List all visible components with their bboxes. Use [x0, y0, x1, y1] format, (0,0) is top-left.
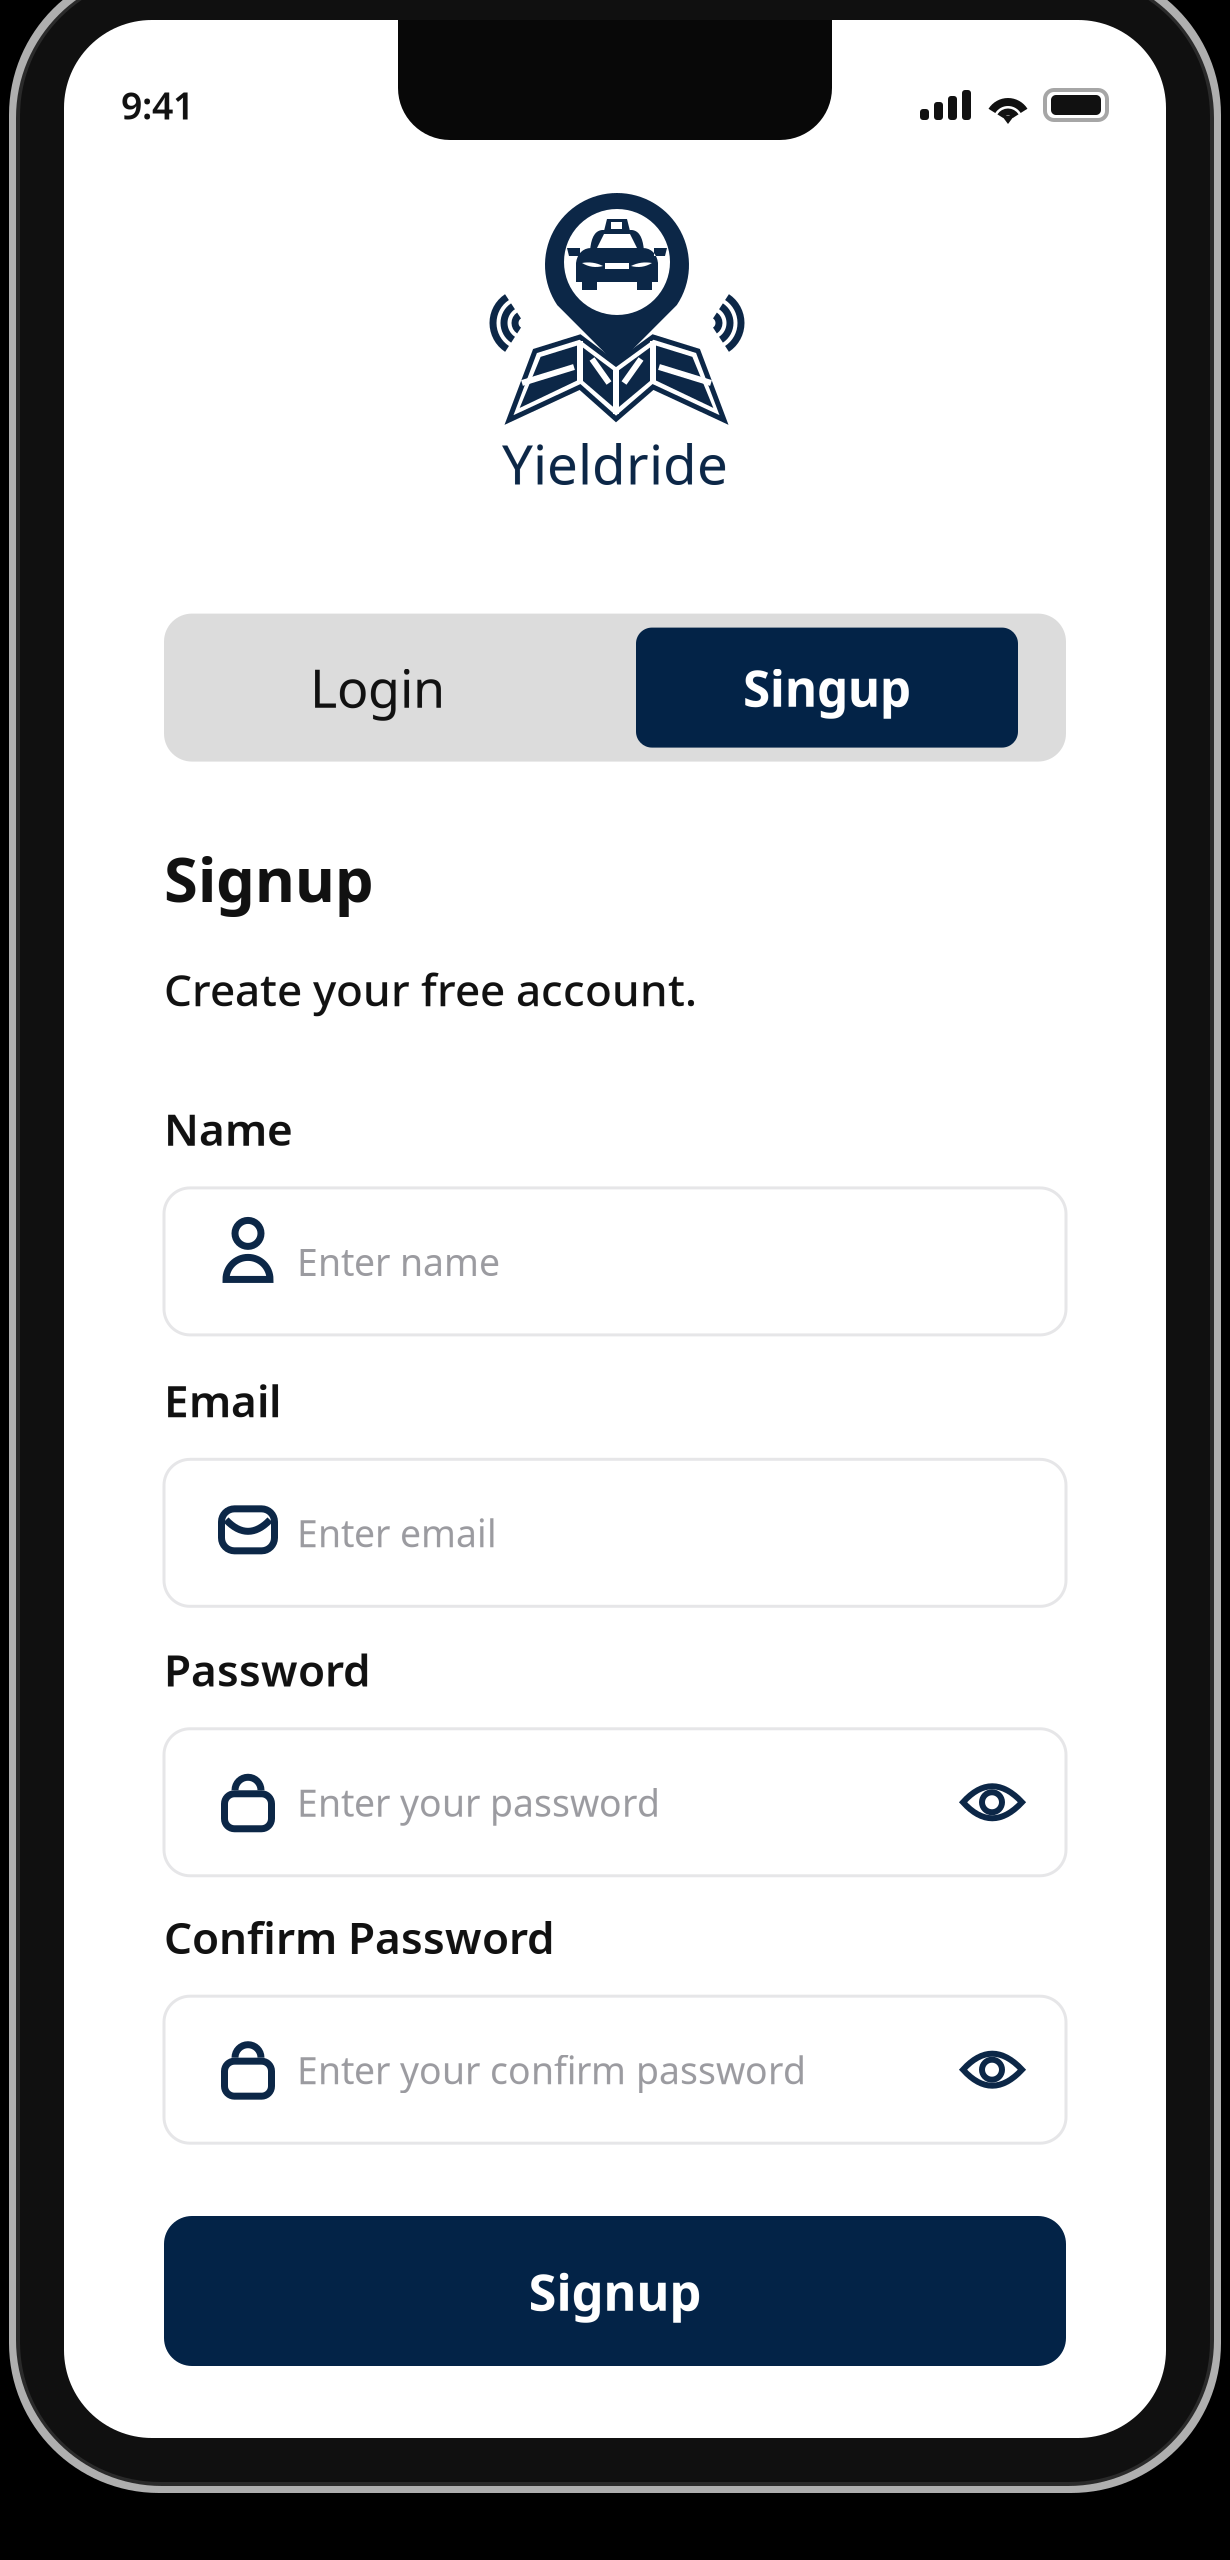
staticText: Yieldride [502, 427, 728, 500]
staticText: Enter your confirm password [297, 2045, 806, 2094]
button[interactable]: Singup [636, 628, 1018, 748]
button[interactable]: Signup [164, 2216, 1066, 2366]
staticText: Confirm Password [164, 1908, 555, 1966]
staticText: Enter email [297, 1508, 497, 1558]
staticText: Name [164, 1099, 293, 1158]
staticText: Singup [743, 655, 911, 720]
button[interactable]: Enter name [164, 1188, 1066, 1335]
staticText: Enter name [297, 1237, 500, 1286]
staticText: Create your free account. [164, 960, 697, 1018]
staticText: Signup [528, 2257, 701, 2325]
staticText: Login [310, 653, 445, 722]
staticText: Email [164, 1371, 281, 1429]
button[interactable]: Enter your password [164, 1729, 1066, 1876]
staticText: 9:41 [121, 80, 194, 130]
staticText: Enter your password [297, 1777, 660, 1827]
staticText: Signup [164, 838, 374, 919]
staticText: Password [164, 1640, 371, 1699]
button[interactable]: Enter your confirm password [164, 1996, 1066, 2143]
button[interactable]: Login [164, 628, 636, 748]
button[interactable]: Enter email [164, 1459, 1066, 1606]
